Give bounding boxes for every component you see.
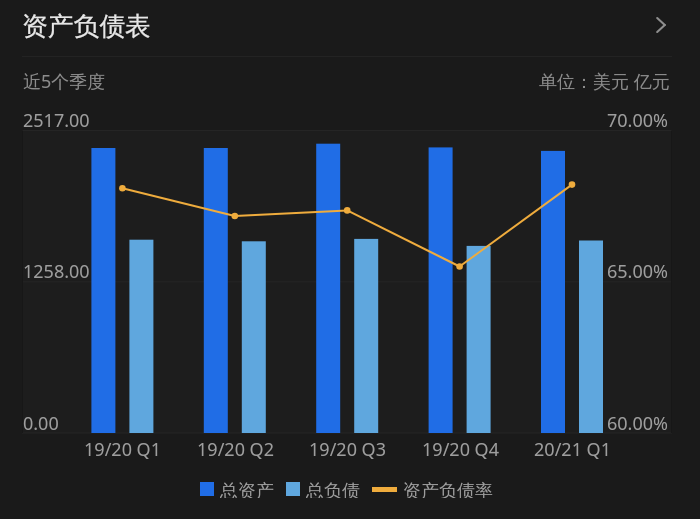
staticText: 近5个季度 bbox=[23, 69, 106, 94]
button[interactable]: 总资产 bbox=[200, 480, 274, 498]
staticText: 19/20 Q3 bbox=[309, 437, 386, 462]
staticText: 19/20 Q2 bbox=[197, 437, 274, 462]
staticText: 单位：美元 亿元 bbox=[539, 69, 670, 94]
staticText: 0.00 bbox=[23, 411, 59, 436]
button[interactable]: 资产负债表 bbox=[0, 0, 700, 56]
staticText: 总资产 bbox=[220, 480, 274, 498]
button[interactable]: 总负债 bbox=[286, 480, 360, 498]
staticText: 70.00% bbox=[607, 108, 668, 133]
staticText: 2517.00 bbox=[23, 108, 90, 133]
button[interactable]: 查看详情 bbox=[641, 5, 681, 45]
staticText: 19/20 Q1 bbox=[84, 437, 161, 462]
staticText: 1258.00 bbox=[23, 259, 90, 284]
button[interactable]: 资产负债率 bbox=[372, 480, 493, 498]
staticText: 资产负债率 bbox=[403, 480, 493, 498]
staticText: 总负债 bbox=[306, 480, 360, 498]
staticText: 19/20 Q4 bbox=[422, 437, 499, 462]
staticText: 20/21 Q1 bbox=[534, 437, 611, 462]
staticText: 60.00% bbox=[607, 411, 668, 436]
staticText: 65.00% bbox=[607, 259, 668, 284]
staticText: 资产负债表 bbox=[22, 10, 151, 43]
